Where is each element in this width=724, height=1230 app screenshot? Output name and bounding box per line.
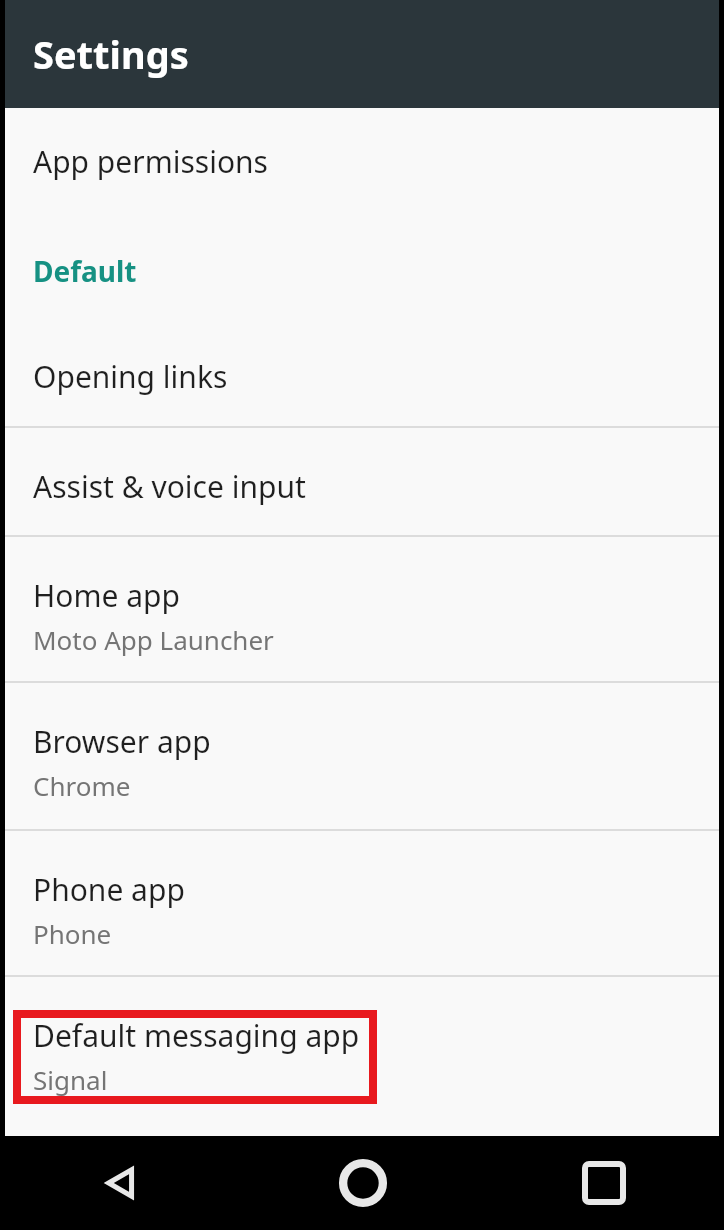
button[interactable]: Browser app bbox=[0, 683, 724, 829]
staticText: Moto App Launcher bbox=[33, 622, 274, 657]
staticText: Default bbox=[33, 252, 137, 290]
staticText: Settings bbox=[33, 28, 189, 80]
staticText: Assist & voice input bbox=[33, 466, 306, 507]
staticText: Home app bbox=[33, 575, 180, 616]
button[interactable]: Home app bbox=[0, 537, 724, 681]
button[interactable]: App permissions bbox=[0, 108, 724, 216]
button[interactable]: Assist & voice input bbox=[0, 428, 724, 535]
button[interactable]: Home bbox=[242, 1136, 483, 1230]
button[interactable]: Opening links bbox=[0, 318, 724, 426]
staticText: Phone app bbox=[33, 869, 185, 910]
staticText: Signal bbox=[33, 1062, 108, 1097]
button[interactable]: Phone app bbox=[0, 831, 724, 975]
staticText: Phone bbox=[33, 916, 112, 951]
staticText: App permissions bbox=[33, 141, 268, 182]
staticText: Chrome bbox=[33, 768, 131, 803]
staticText: Browser app bbox=[33, 721, 211, 762]
button[interactable]: Recent apps bbox=[483, 1136, 724, 1230]
button[interactable]: Back bbox=[0, 1136, 242, 1230]
staticText: Opening links bbox=[33, 356, 228, 397]
button[interactable]: Default messaging app bbox=[0, 977, 724, 1122]
staticText: Default messaging app bbox=[33, 1015, 360, 1056]
